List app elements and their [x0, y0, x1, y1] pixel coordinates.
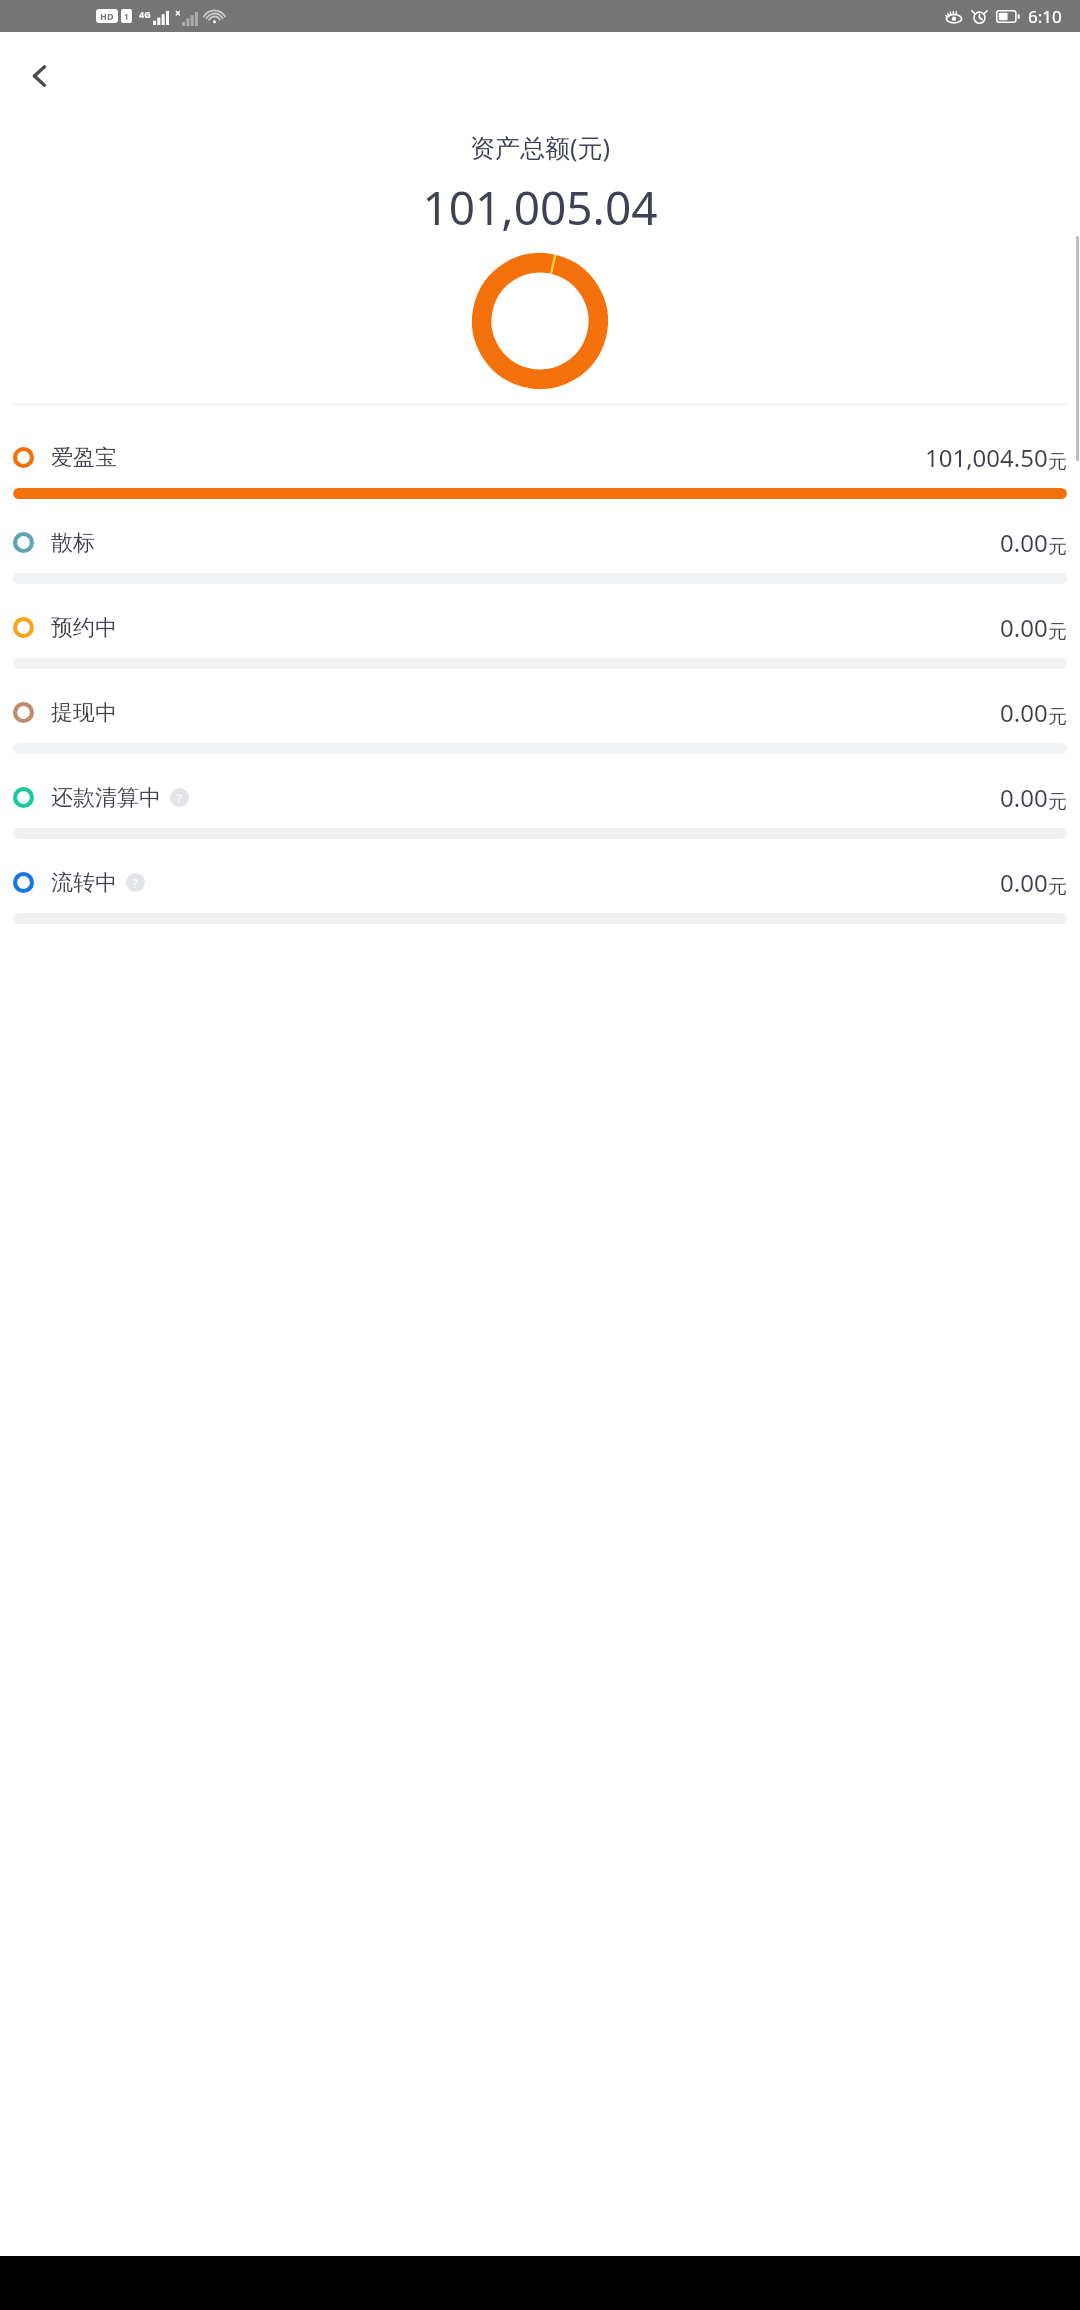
staticText: 元 [1048, 790, 1067, 814]
button[interactable]: 还款清算中 [0, 781, 1080, 839]
staticText: 0.00 [1000, 781, 1048, 814]
button[interactable]: 预约中 [0, 611, 1080, 669]
staticText: 元 [1048, 450, 1067, 474]
staticText: 0.00 [1000, 526, 1048, 559]
staticText: 0.00 [1000, 611, 1048, 644]
staticText: × [175, 6, 181, 20]
staticText: 散标 [51, 529, 95, 557]
staticText: 0.00 [1000, 696, 1048, 729]
staticText: 1 [124, 11, 129, 22]
staticText: ? [176, 789, 183, 807]
staticText: 爱盈宝 [51, 444, 117, 472]
staticText: ? [132, 874, 139, 892]
staticText: 101,004.50 [925, 441, 1048, 474]
staticText: 还款清算中 [51, 784, 161, 812]
staticText: HD [100, 10, 114, 22]
staticText: 101,005.04 [0, 176, 1080, 239]
staticText: 4G [139, 8, 151, 20]
button[interactable]: Help [170, 788, 189, 807]
staticText: 0.00 [1000, 866, 1048, 899]
button[interactable]: 提现中 [0, 696, 1080, 754]
button[interactable]: Back [12, 48, 68, 104]
staticText: 流转中 [51, 869, 117, 897]
button[interactable]: 爱盈宝 [0, 441, 1080, 499]
button[interactable]: 流转中 [0, 866, 1080, 924]
staticText: 元 [1048, 705, 1067, 729]
button[interactable]: 散标 [0, 526, 1080, 584]
staticText: 预约中 [51, 614, 117, 642]
button[interactable]: Help [126, 873, 145, 892]
staticText: 6:10 [1028, 5, 1062, 28]
staticText: 资产总额(元) [0, 130, 1080, 164]
staticText: 元 [1048, 620, 1067, 644]
staticText: 提现中 [51, 699, 117, 727]
staticText: 元 [1048, 875, 1067, 899]
staticText: 元 [1048, 535, 1067, 559]
